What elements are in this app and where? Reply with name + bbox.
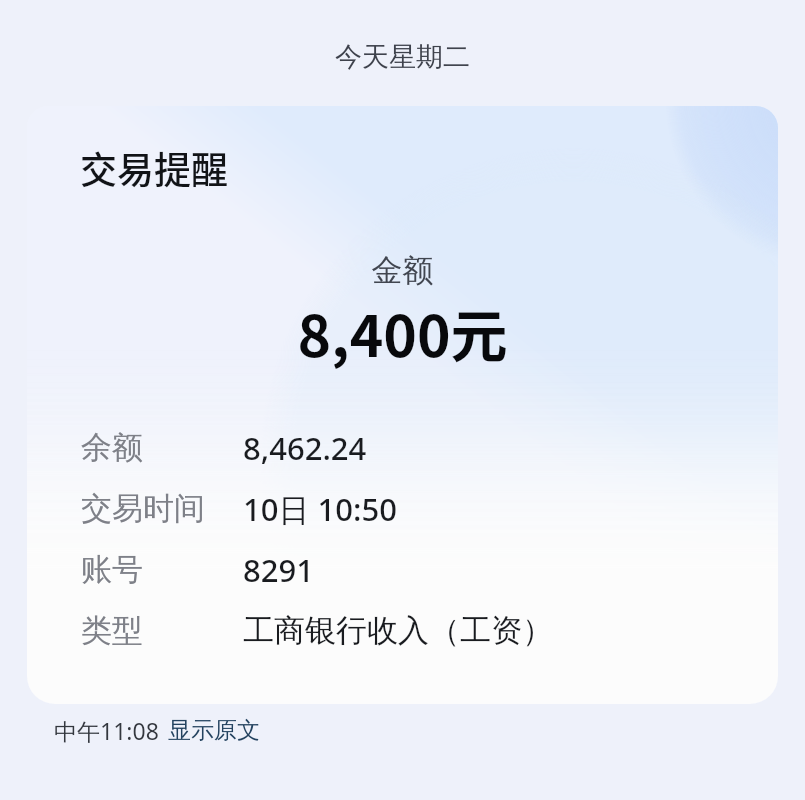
staticText: 中午11:08 [54,715,159,746]
staticText: 类型 [81,611,143,650]
staticText: 显示原文 [168,716,260,745]
staticText: 余额 [81,428,143,467]
staticText: 账号 [81,550,143,589]
staticText: 交易提醒 [80,141,228,195]
staticText: 8,462.24 [243,427,367,469]
staticText: 交易时间 [81,489,205,528]
staticText: 8291 [243,549,314,591]
staticText: 工商银行收入（工资） [243,611,553,650]
staticText: 8,400元 [27,291,778,374]
staticText: 今天星期二 [335,40,470,74]
button[interactable]: 交易提醒 [27,106,778,704]
staticText: 10日 10:50 [243,488,397,530]
button[interactable]: 显示原文 [168,716,260,745]
staticText: 金额 [27,251,778,290]
